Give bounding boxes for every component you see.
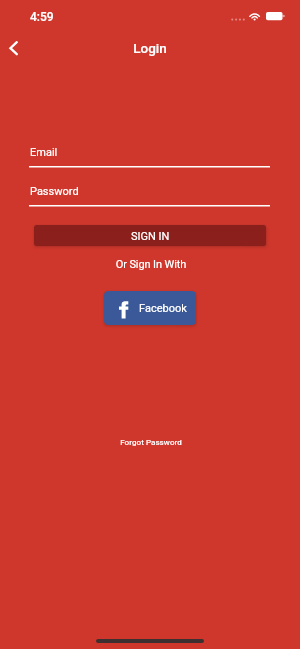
button[interactable]: Email (29, 142, 270, 168)
staticText: Or Sign In With (1, 258, 300, 271)
button[interactable]: Facebook (104, 291, 196, 325)
button[interactable]: SIGN IN (34, 225, 266, 246)
staticText: Password (30, 185, 79, 198)
staticText: 4:59 (30, 10, 54, 24)
staticText: Forgot Password (120, 438, 182, 447)
button[interactable]: Forgot Password (114, 434, 186, 450)
staticText: Facebook (139, 302, 187, 315)
staticText: Email (30, 146, 58, 159)
staticText: Login (0, 40, 300, 56)
staticText: SIGN IN (131, 230, 170, 243)
button[interactable]: Password (29, 181, 270, 207)
button[interactable]: Back (0, 30, 28, 66)
